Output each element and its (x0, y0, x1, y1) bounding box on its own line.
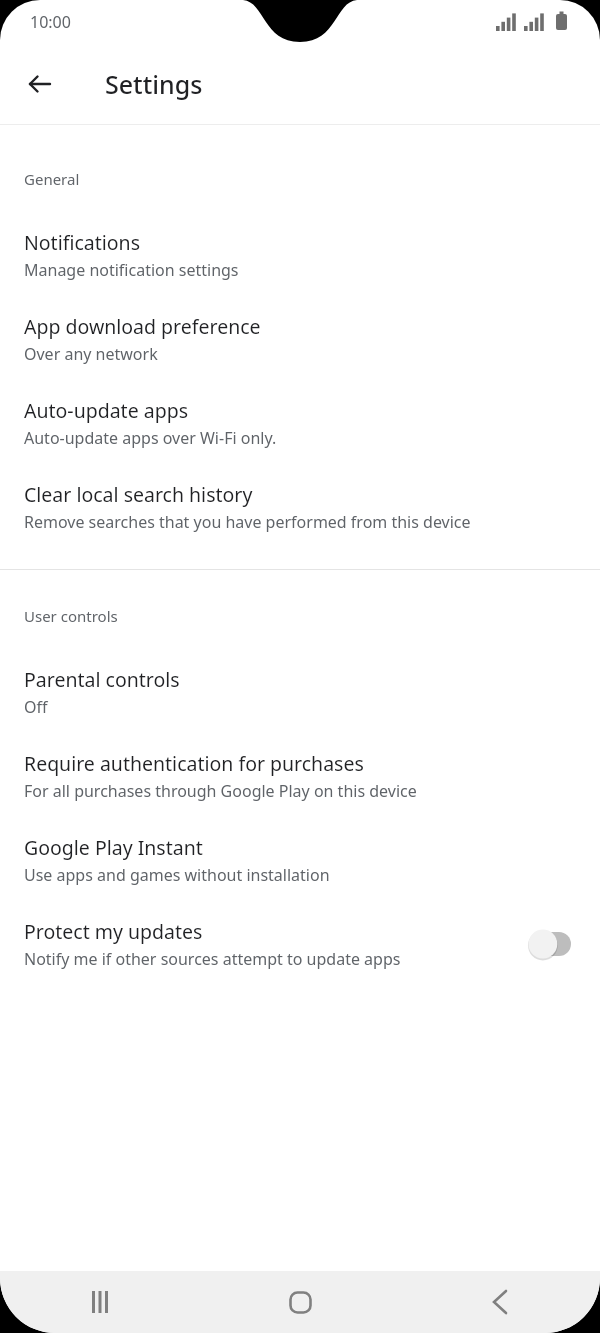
staticText: 10:00 (30, 11, 71, 33)
staticText: Auto-update apps over Wi-Fi only. (24, 427, 277, 449)
staticText: Protect my updates (24, 918, 203, 945)
button[interactable]: Auto-update apps (0, 365, 600, 449)
button[interactable]: Protect my updates toggle (522, 924, 580, 964)
staticText: User controls (24, 606, 118, 626)
staticText: Over any network (24, 343, 158, 365)
staticText: Settings (105, 67, 203, 101)
staticText: Google Play Instant (24, 834, 203, 861)
button[interactable]: App download preference (0, 281, 600, 365)
staticText: Notify me if other sources attempt to up… (24, 948, 401, 970)
staticText: Remove searches that you have performed … (24, 511, 471, 533)
staticText: Parental controls (24, 666, 180, 693)
staticText: Manage notification settings (24, 259, 239, 281)
staticText: Clear local search history (24, 481, 253, 508)
button[interactable]: Recent apps (0, 1271, 200, 1333)
button[interactable]: Clear local search history (0, 449, 600, 533)
staticText: Auto-update apps (24, 397, 188, 424)
staticText: Require authentication for purchases (24, 750, 364, 777)
staticText: App download preference (24, 313, 261, 340)
button[interactable]: Protect my updates (0, 886, 600, 970)
button[interactable]: Parental controls (0, 636, 600, 718)
staticText: Off (24, 696, 48, 718)
button[interactable]: Require authentication for purchases (0, 718, 600, 802)
button[interactable]: Home (200, 1271, 400, 1333)
staticText: Use apps and games without installation (24, 864, 330, 886)
button[interactable]: Back (16, 60, 64, 108)
staticText: For all purchases through Google Play on… (24, 780, 417, 802)
button[interactable]: Back (400, 1271, 600, 1333)
staticText: General (24, 169, 80, 189)
staticText: Notifications (24, 229, 140, 256)
button[interactable]: Notifications (0, 199, 600, 281)
button[interactable]: Google Play Instant (0, 802, 600, 886)
